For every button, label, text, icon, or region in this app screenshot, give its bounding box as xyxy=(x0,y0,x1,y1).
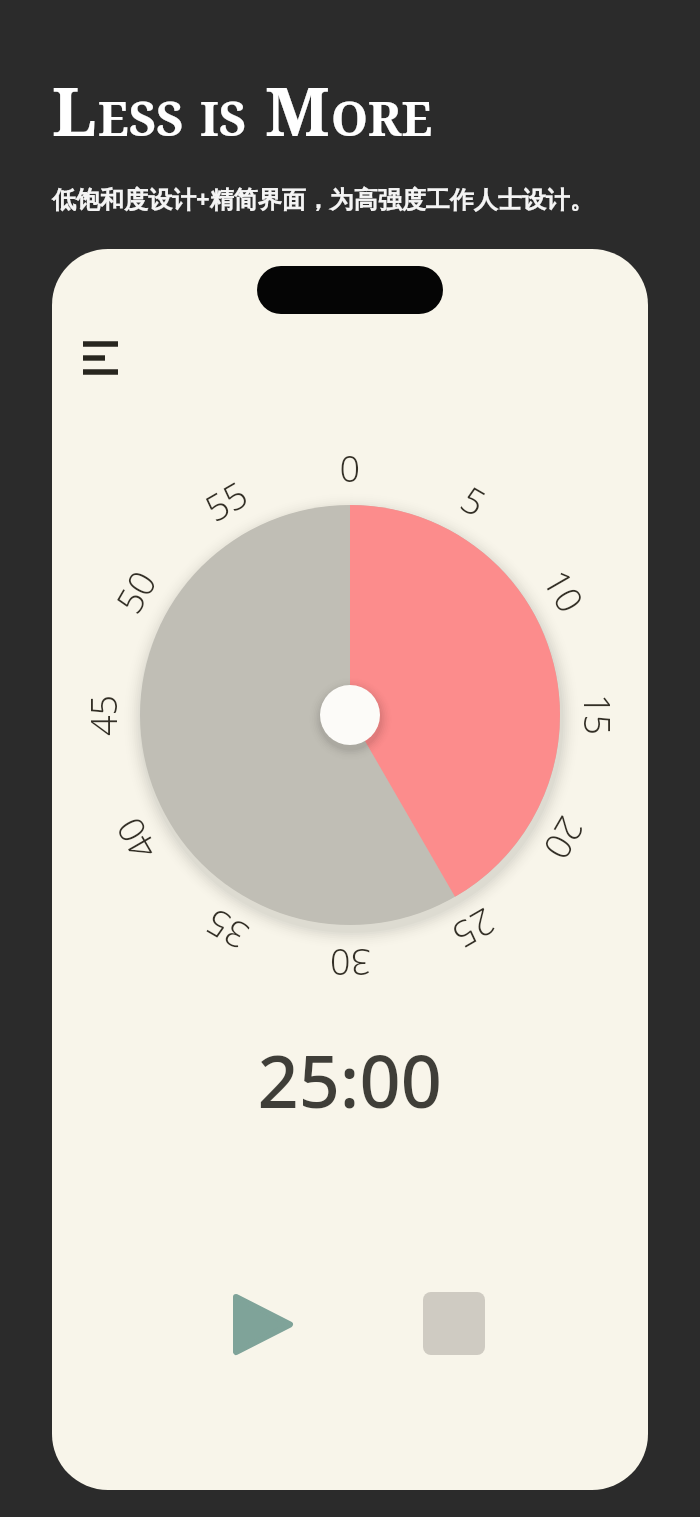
button[interactable]: Stop timer xyxy=(419,1288,491,1360)
button[interactable]: Menu xyxy=(70,329,132,389)
button[interactable]: Timer dial set to 25 minutes xyxy=(140,505,560,925)
button[interactable]: Start timer xyxy=(226,1288,298,1360)
